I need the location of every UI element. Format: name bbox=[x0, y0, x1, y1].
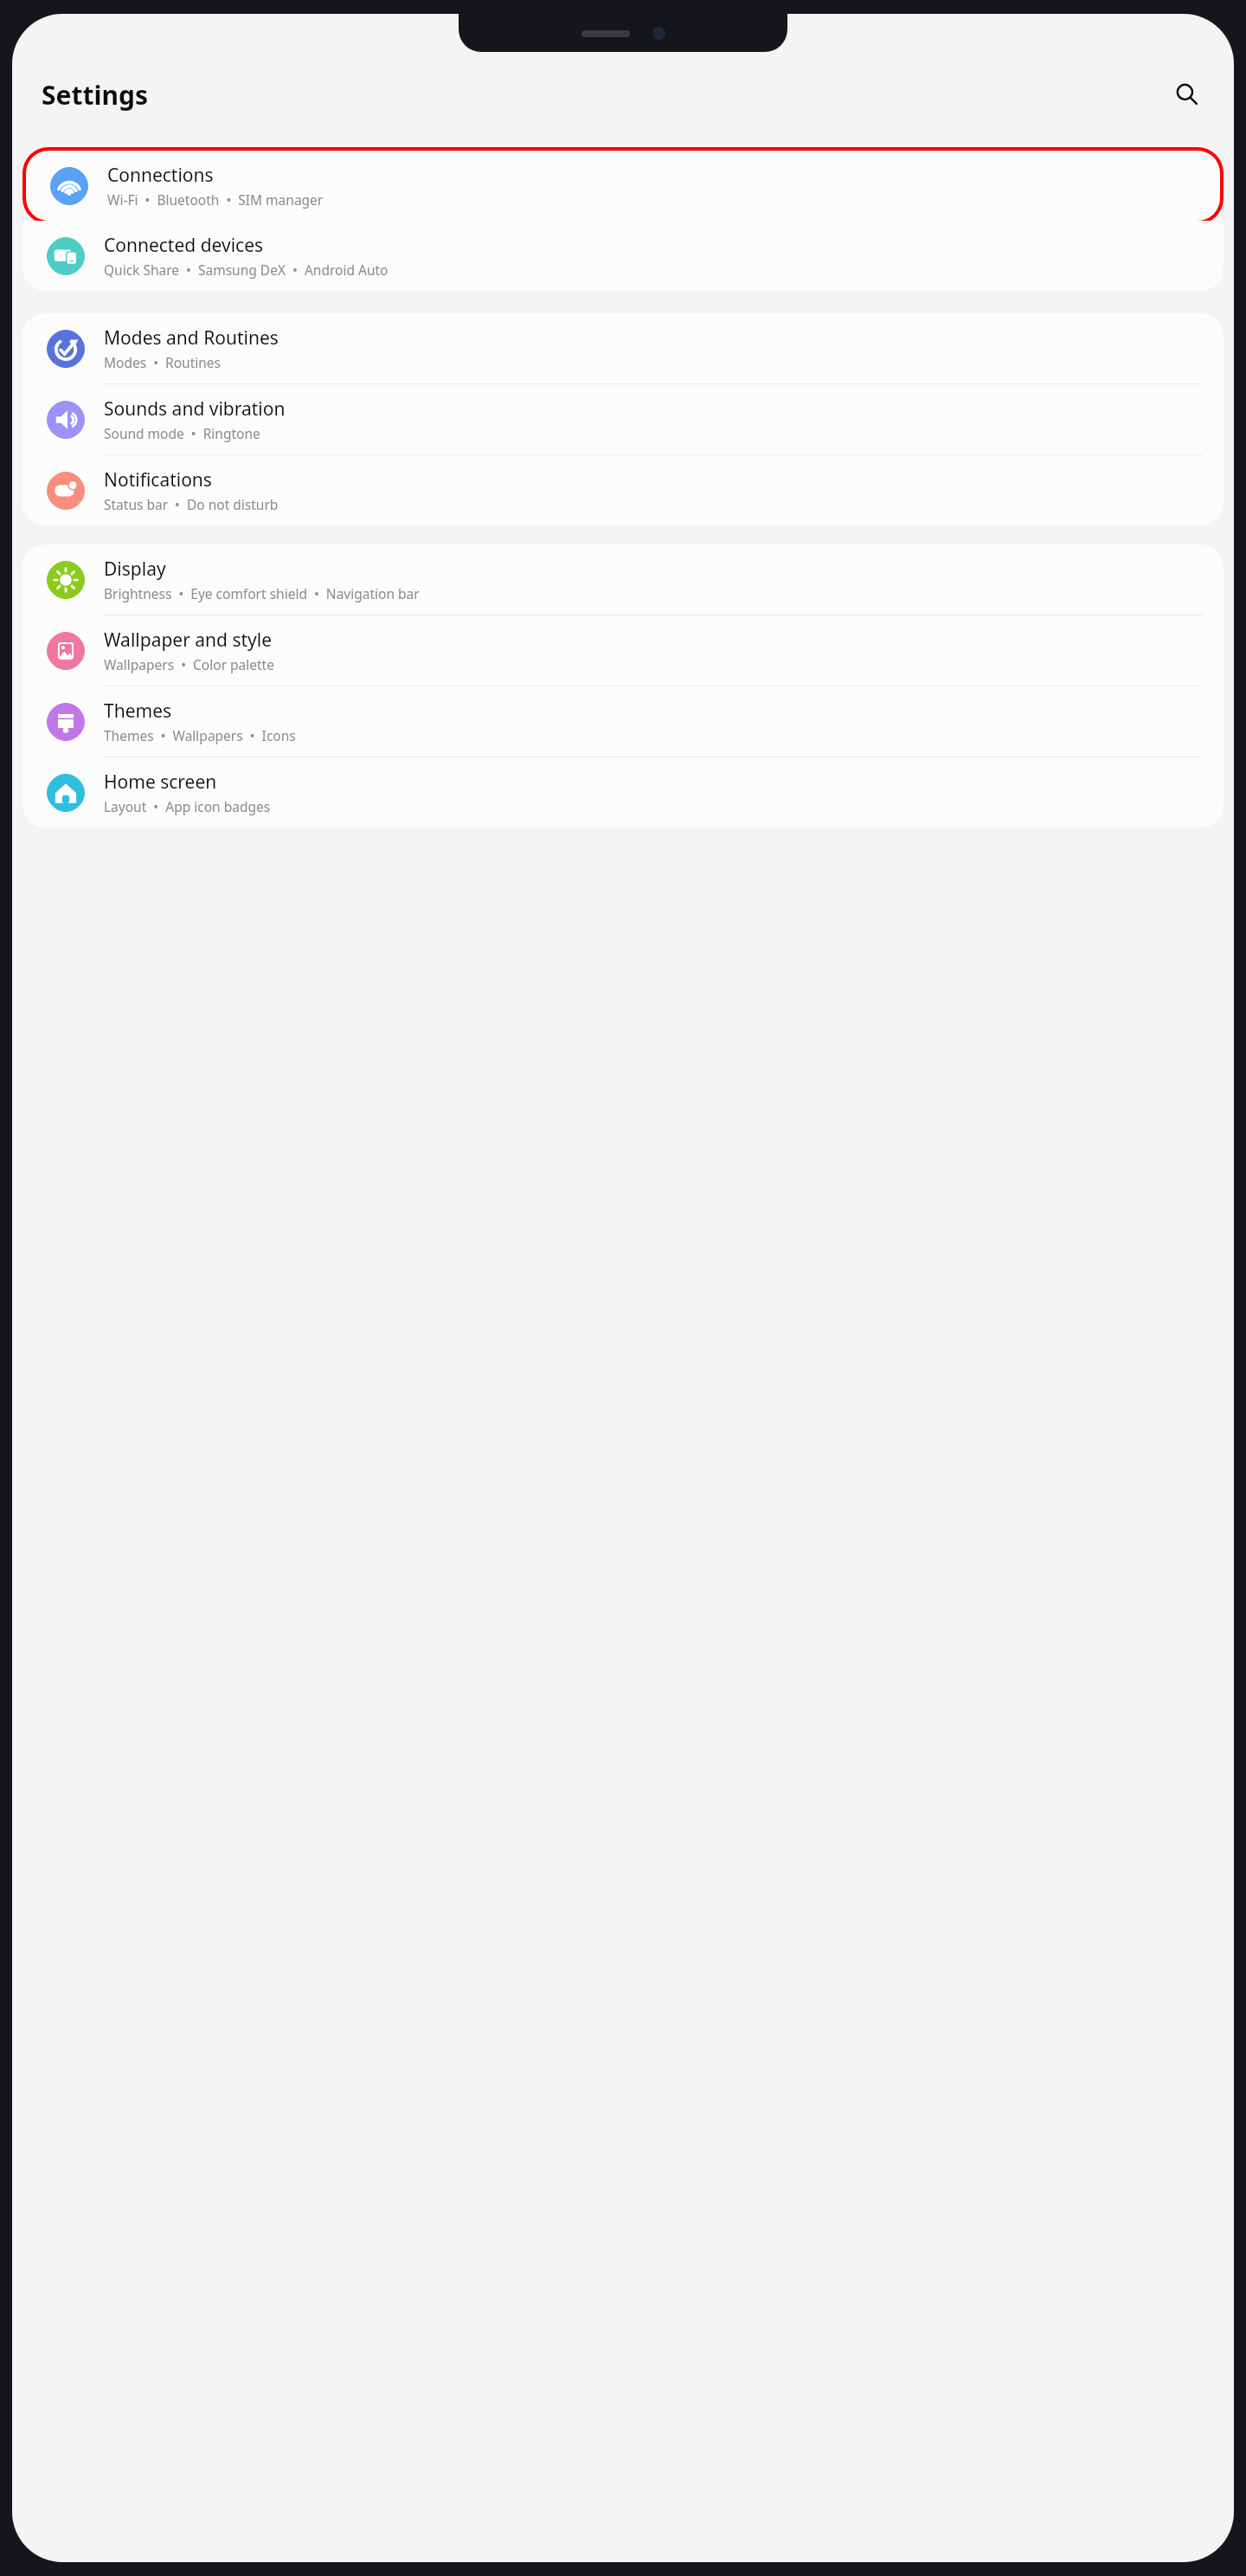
button[interactable]: Sounds and vibration bbox=[22, 384, 1224, 454]
staticText: Brightness • Eye comfort shield • Naviga… bbox=[104, 584, 420, 602]
staticText: Wallpaper and style bbox=[104, 628, 273, 653]
staticText: Modes and Routines bbox=[104, 325, 279, 351]
button[interactable]: Display bbox=[22, 544, 1224, 615]
staticText: Sound mode • Ringtone bbox=[104, 424, 260, 442]
button[interactable]: Connections bbox=[26, 151, 1220, 221]
staticText: Themes • Wallpapers • Icons bbox=[104, 726, 296, 744]
staticText: Home screen bbox=[104, 770, 217, 795]
staticText: Notifications bbox=[104, 467, 212, 493]
button[interactable]: Modes and Routines bbox=[22, 313, 1224, 383]
staticText: Connected devices bbox=[104, 233, 264, 258]
staticText: Themes bbox=[104, 699, 172, 724]
button[interactable]: Home screen bbox=[22, 757, 1224, 828]
staticText: Wi-Fi • Bluetooth • SIM manager bbox=[107, 190, 324, 209]
staticText: Display bbox=[104, 557, 166, 582]
staticText: Connections bbox=[107, 163, 214, 188]
staticText: Settings bbox=[42, 77, 148, 113]
button[interactable]: Connected devices bbox=[22, 221, 1224, 291]
staticText: Quick Share • Samsung DeX • Android Auto bbox=[104, 261, 389, 279]
staticText: Sounds and vibration bbox=[104, 396, 286, 422]
button[interactable]: Search bbox=[1166, 74, 1208, 115]
staticText: Wallpapers • Color palette bbox=[104, 655, 274, 673]
staticText: Modes • Routines bbox=[104, 353, 222, 371]
button[interactable]: Themes bbox=[22, 686, 1224, 757]
staticText: Status bar • Do not disturb bbox=[104, 495, 279, 513]
button[interactable]: Wallpaper and style bbox=[22, 615, 1224, 686]
button[interactable]: Notifications bbox=[22, 455, 1224, 525]
staticText: Layout • App icon badges bbox=[104, 797, 271, 815]
